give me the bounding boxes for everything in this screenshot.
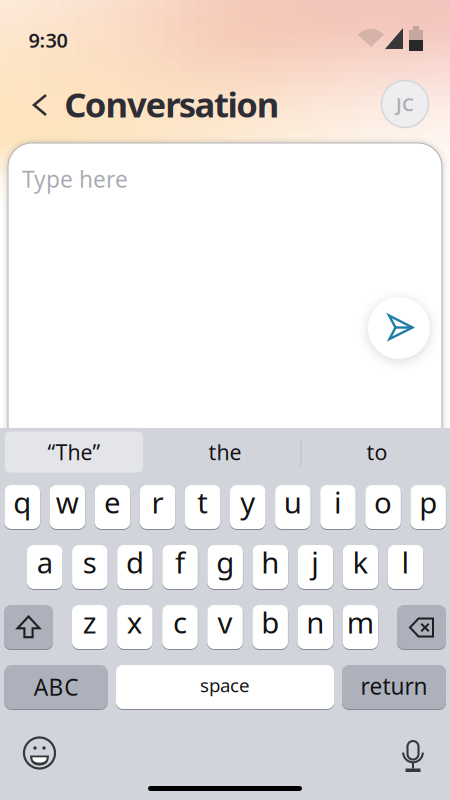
staticText: p [419, 482, 437, 521]
staticText: l [402, 542, 410, 581]
staticText: f [175, 542, 185, 581]
staticText: j [311, 542, 319, 581]
staticText: JC [396, 92, 414, 116]
staticText: u [284, 482, 302, 521]
staticText: c [173, 602, 187, 641]
staticText: e [104, 482, 121, 521]
staticText: x [127, 602, 143, 641]
staticText: o [374, 482, 392, 521]
staticText: v [218, 602, 233, 641]
staticText: n [306, 602, 324, 641]
staticText: r [152, 482, 164, 521]
staticText: Conversation [64, 81, 280, 127]
staticText: b [261, 602, 279, 641]
staticText: g [216, 542, 234, 581]
staticText: i [334, 482, 342, 521]
staticText: d [126, 542, 144, 581]
staticText: to [366, 438, 387, 466]
staticText: z [83, 602, 97, 641]
staticText: Type here [22, 164, 128, 194]
staticText: t [197, 482, 208, 521]
staticText: q [13, 482, 31, 521]
staticText: 9:30 [28, 27, 67, 53]
staticText: return [360, 671, 427, 701]
staticText: s [83, 542, 97, 581]
staticText: a [37, 542, 53, 581]
staticText: m [347, 602, 374, 641]
staticText: “The” [47, 438, 100, 466]
staticText: the [208, 438, 241, 466]
staticText: w [56, 482, 79, 521]
staticText: h [261, 542, 279, 581]
staticText: k [352, 542, 368, 581]
staticText: space [200, 673, 250, 697]
staticText: y [240, 482, 255, 521]
staticText: ABC [34, 672, 78, 702]
